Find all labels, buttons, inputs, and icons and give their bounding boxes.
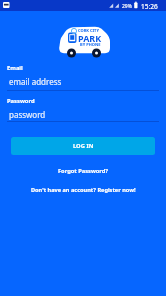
staticText: BY PHONE	[80, 42, 101, 47]
staticText: Email	[7, 64, 23, 72]
button[interactable]: email address	[7, 76, 159, 90]
staticText: PARK	[78, 32, 102, 44]
button[interactable]: Don't have an account? Register now!	[31, 186, 136, 194]
staticText: LOG IN	[73, 142, 94, 150]
button[interactable]: password	[7, 109, 159, 123]
staticText: 29%	[122, 3, 132, 10]
staticText: CORK CITY	[78, 28, 99, 33]
staticText: Password	[7, 97, 35, 105]
staticText: 15:26	[141, 2, 158, 11]
button[interactable]: Forgot Password?	[58, 167, 109, 175]
button[interactable]: LOG IN	[11, 137, 155, 155]
staticText: email address	[9, 76, 62, 87]
staticText: password	[9, 109, 46, 120]
